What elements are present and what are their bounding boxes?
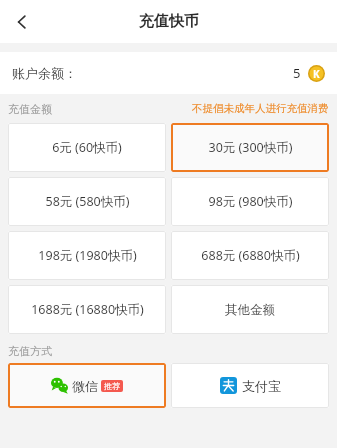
staticText: 1688元 (16880快币) [31, 301, 144, 318]
button[interactable]: 其他金额 [171, 285, 329, 334]
staticText: 98元 (980快币) [208, 193, 293, 210]
staticText: 不提倡未成年人进行充值消费 [192, 102, 329, 115]
button[interactable]: 688元 (6880快币) [171, 231, 329, 280]
button[interactable]: 58元 (580快币) [8, 177, 166, 226]
button[interactable]: Back [0, 0, 43, 43]
button[interactable]: WeChat [8, 363, 166, 408]
staticText: 30元 (300快币) [208, 139, 293, 156]
staticText: 充值方式 [8, 344, 52, 358]
staticText: K [313, 67, 320, 81]
staticText: 充值金额 [8, 102, 52, 116]
button[interactable]: 6元 (60快币) [8, 123, 166, 172]
other: Alipay [220, 377, 237, 394]
button[interactable]: Alipay [171, 363, 329, 408]
staticText: 充值快币 [139, 12, 199, 31]
staticText: 微信 [72, 378, 98, 394]
button[interactable]: 1688元 (16880快币) [8, 285, 166, 334]
staticText: 5 [293, 64, 301, 82]
staticText: 推荐 [104, 381, 120, 391]
staticText: 58元 (580快币) [45, 193, 130, 210]
other: WeChat [51, 377, 68, 394]
button[interactable]: 账户余额： [0, 52, 337, 94]
staticText: 6元 (60快币) [52, 139, 122, 156]
staticText: 账户余额： [12, 65, 77, 81]
button[interactable]: 198元 (1980快币) [8, 231, 166, 280]
staticText: 688元 (6880快币) [201, 247, 300, 264]
staticText: 198元 (1980快币) [38, 247, 137, 264]
staticText: 支付宝 [242, 378, 281, 394]
button[interactable]: 30元 (300快币) [171, 123, 329, 172]
staticText: 其他金额 [225, 302, 275, 318]
button[interactable]: 98元 (980快币) [171, 177, 329, 226]
